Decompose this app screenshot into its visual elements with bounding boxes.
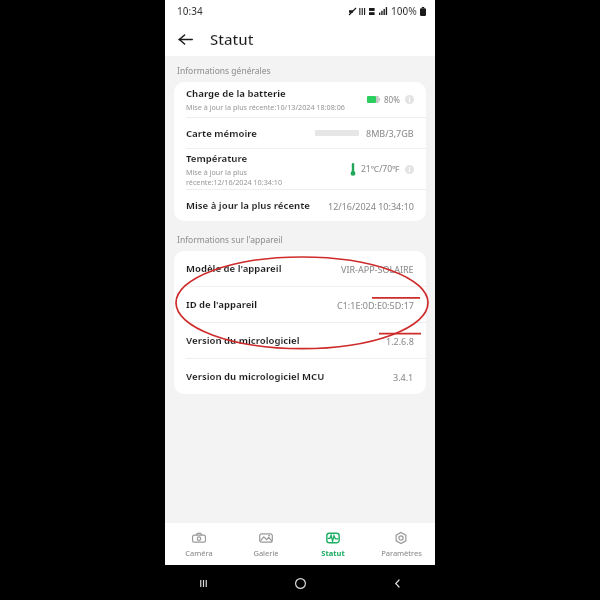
button[interactable]: Température xyxy=(174,149,426,189)
button[interactable]: Mise à jour la plus récente xyxy=(174,190,426,221)
staticText: 100% xyxy=(391,4,417,18)
staticText: 21℃/70℉ xyxy=(361,163,400,175)
staticText: 8MB/3,7GB xyxy=(366,127,414,139)
button[interactable]: Statut xyxy=(299,523,367,565)
button[interactable]: ID de l'appareil xyxy=(174,287,426,322)
staticText: Charge de la batterie xyxy=(186,87,286,100)
button[interactable]: Back xyxy=(172,26,199,53)
staticText: Statut xyxy=(321,548,345,558)
staticText: 3.4.1 xyxy=(393,371,414,383)
staticText: Température xyxy=(186,152,248,165)
button[interactable]: Back xyxy=(387,573,407,593)
button[interactable]: Recent apps xyxy=(193,573,213,593)
staticText: Mise à jour la plus récente xyxy=(186,199,328,212)
staticText: 12/16/2024 10:34:10 xyxy=(328,200,414,212)
button[interactable]: Galerie xyxy=(232,523,299,565)
button[interactable]: Version du micrologiciel MCU xyxy=(174,359,426,394)
staticText: Version du micrologiciel MCU xyxy=(186,370,393,383)
staticText: Caméra xyxy=(185,548,213,558)
button[interactable]: Charge de la batterie xyxy=(174,82,426,117)
button[interactable]: Home xyxy=(290,573,310,593)
staticText: Mise à jour la plus récente:10/13/2024 1… xyxy=(186,102,345,112)
button[interactable]: Carte mémoire xyxy=(174,118,426,148)
button[interactable]: Version du micrologiciel xyxy=(174,323,426,358)
staticText: Informations générales xyxy=(177,65,271,77)
button[interactable]: Paramètres xyxy=(367,523,435,565)
staticText: C1:1E:0D:E0:5D:17 xyxy=(337,299,414,311)
button[interactable]: Modèle de l'appareil xyxy=(174,251,426,286)
staticText: Carte mémoire xyxy=(186,127,315,140)
staticText: Statut xyxy=(210,29,254,49)
staticText: VIR-APP-SOLAIRE xyxy=(341,263,414,275)
staticText: 80% xyxy=(384,94,400,105)
button[interactable]: Info xyxy=(405,95,414,104)
staticText: récente:12/16/2024 10:34:10 xyxy=(186,177,283,187)
staticText: Paramètres xyxy=(381,548,422,558)
staticText: ID de l'appareil xyxy=(186,298,337,311)
staticText: Informations sur l'appareil xyxy=(177,234,283,246)
staticText: 1.2.6.8 xyxy=(386,335,414,347)
staticText: Modèle de l'appareil xyxy=(186,262,341,275)
button[interactable]: Info xyxy=(405,165,414,174)
staticText: Version du micrologiciel xyxy=(186,334,386,347)
staticText: Galerie xyxy=(253,548,279,558)
button[interactable]: Caméra xyxy=(165,523,232,565)
staticText: Mise à jour la plus xyxy=(186,167,248,177)
staticText: 10:34 xyxy=(177,4,203,18)
